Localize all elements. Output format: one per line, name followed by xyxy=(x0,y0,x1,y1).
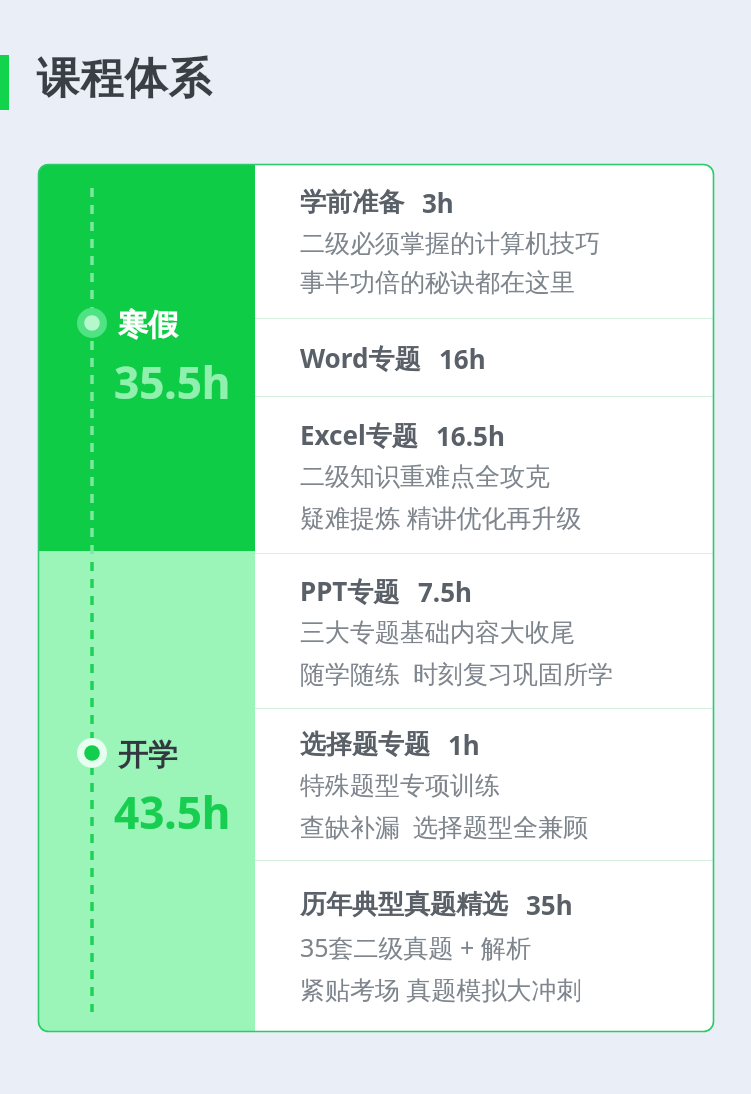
staticText: 16.5h xyxy=(436,418,505,453)
button[interactable]: 选择题专题 xyxy=(255,709,714,860)
staticText: 学前准备 xyxy=(300,186,404,219)
button[interactable]: 历年典型真题精选 xyxy=(255,861,714,1032)
button[interactable]: Excel专题 xyxy=(255,397,714,553)
staticText: 历年典型真题精选 xyxy=(300,888,508,921)
staticText: 事半功倍的秘诀都在这里 xyxy=(300,267,575,298)
staticText: 紧贴考场 真题模拟大冲刺 xyxy=(300,972,582,1006)
staticText: Word专题 xyxy=(300,340,421,376)
staticText: 随学随练 时刻复习巩固所学 xyxy=(300,656,614,690)
staticText: 16h xyxy=(439,341,486,376)
staticText: 35套二级真题 + 解析 xyxy=(300,930,531,964)
staticText: 寒假 xyxy=(118,306,178,344)
staticText: 35.5h xyxy=(114,352,231,412)
staticText: 43.5h xyxy=(114,782,231,842)
staticText: Excel专题 xyxy=(300,417,418,453)
staticText: PPT专题 xyxy=(300,573,400,609)
staticText: 35h xyxy=(526,887,573,922)
staticText: 3h xyxy=(422,185,454,220)
button[interactable]: 学前准备 xyxy=(255,164,714,318)
staticText: 三大专题基础内容大收尾 xyxy=(300,617,575,648)
staticText: 7.5h xyxy=(418,574,472,609)
staticText: 选择题专题 xyxy=(300,728,430,761)
staticText: 1h xyxy=(448,727,480,762)
staticText: 课程体系 xyxy=(36,52,212,106)
button[interactable]: Word专题 xyxy=(255,319,714,396)
staticText: 二级知识重难点全攻克 xyxy=(300,461,550,492)
staticText: 疑难提炼 精讲优化再升级 xyxy=(300,500,582,534)
button[interactable]: PPT专题 xyxy=(255,554,714,708)
staticText: 查缺补漏 选择题型全兼顾 xyxy=(300,809,589,843)
staticText: 开学 xyxy=(118,736,178,774)
staticText: 特殊题型专项训练 xyxy=(300,770,500,801)
staticText: 二级必须掌握的计算机技巧 xyxy=(300,228,600,259)
button[interactable]: 寒假 xyxy=(38,164,255,1032)
